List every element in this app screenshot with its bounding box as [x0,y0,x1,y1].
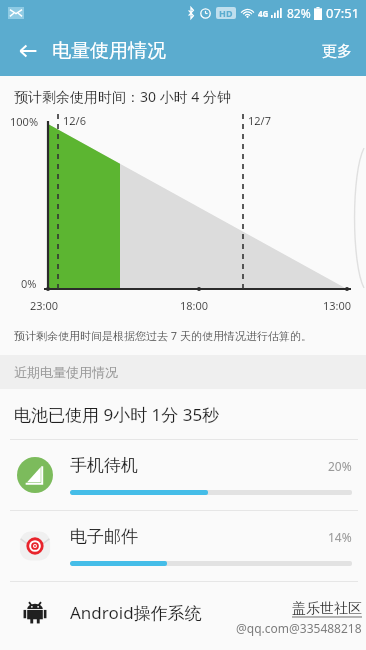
staticText: 18:00 [180,298,209,313]
button[interactable]: Android操作系统 [0,582,366,642]
staticText: @qq.com@335488218 [236,620,362,636]
staticText: 20% [328,458,352,474]
staticText: 13:00 [323,298,352,313]
staticText: 近期电量使用情况 [14,364,118,380]
staticText: 14% [328,529,352,545]
staticText: 预计剩余使用时间是根据您过去 7 天的使用情况进行估算的。 [14,328,313,343]
staticText: 更多 [322,42,352,61]
staticText: 电子邮件 [70,526,328,547]
button[interactable]: 手机待机 [0,440,366,510]
button[interactable]: 更多 [308,32,366,71]
staticText: 4G [258,8,269,19]
staticText: 82% [287,5,311,21]
staticText: 100% [10,114,39,129]
staticText: 电池已使用 9小时 1分 35秒 [14,403,220,426]
staticText: 12/6 [63,113,86,128]
staticText: HD [219,7,233,19]
staticText: Android操作系统 [70,601,202,624]
staticText: 盖乐世社区 [292,600,362,618]
button[interactable]: 电子邮件 [0,511,366,581]
staticText: 07:51 [326,4,360,22]
button[interactable]: Back [8,31,48,71]
staticText: 12/7 [248,113,271,128]
staticText: 预计剩余使用时间：30 小时 4 分钟 [14,87,231,106]
staticText: 0% [21,276,37,291]
staticText: 电量使用情况 [52,39,166,63]
staticText: 手机待机 [70,455,328,476]
staticText: 23:00 [30,298,59,313]
